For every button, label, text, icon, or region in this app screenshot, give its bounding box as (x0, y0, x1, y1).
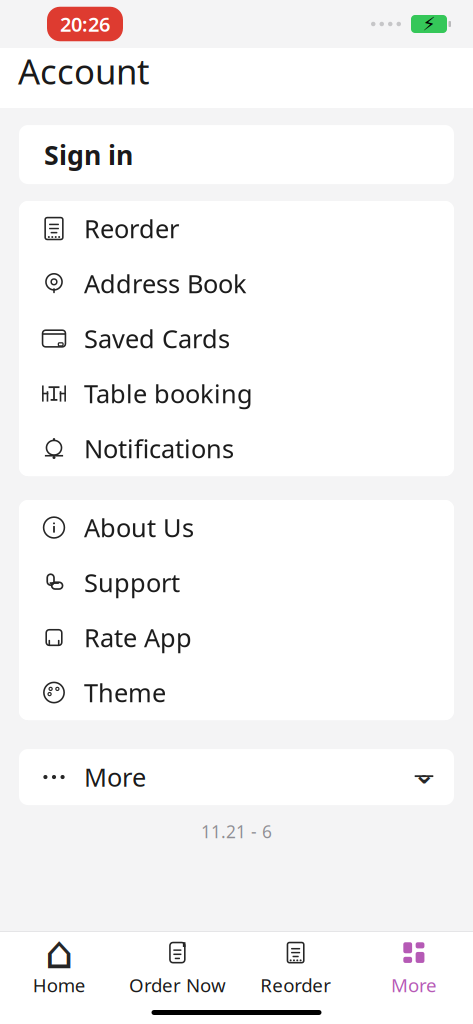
staticText: More (391, 973, 437, 997)
staticText: Notifications (84, 432, 234, 465)
staticText: ⌄ (413, 759, 435, 789)
button[interactable]: More (355, 929, 473, 1005)
button[interactable]: ⌂ (0, 929, 118, 1005)
staticText: Support (84, 566, 180, 599)
staticText: Address Book (84, 267, 247, 300)
staticText: Home (33, 973, 86, 997)
button[interactable]: Notifications (19, 421, 454, 476)
button[interactable]: About Us (19, 500, 454, 555)
staticText: Table booking (84, 377, 253, 410)
button[interactable]: Saved Cards (19, 311, 454, 366)
staticText: Account (18, 48, 150, 94)
staticText: 11.21 - 6 (201, 820, 272, 843)
staticText: Order Now (129, 973, 226, 997)
staticText: Theme (84, 676, 166, 709)
staticText: About Us (84, 511, 194, 544)
staticText: Reorder (260, 973, 331, 997)
staticText: Sign in (44, 137, 133, 172)
staticText: ⚡︎ (422, 13, 435, 35)
button[interactable]: Theme (19, 665, 454, 720)
button[interactable]: More (19, 749, 454, 805)
staticText: 20:26 (60, 11, 110, 37)
button[interactable]: Reorder (19, 201, 454, 256)
button[interactable]: Sign in (19, 125, 454, 184)
staticText: Saved Cards (84, 322, 230, 355)
button[interactable]: Order Now (118, 929, 236, 1005)
staticText: Rate App (84, 621, 192, 654)
button[interactable]: Support (19, 555, 454, 610)
staticText: Reorder (84, 212, 179, 245)
staticText: More (84, 760, 146, 794)
button[interactable]: Reorder (236, 929, 355, 1005)
button[interactable]: Rate App (19, 610, 454, 665)
staticText: ⌂ (45, 927, 74, 978)
button[interactable]: Table booking (19, 366, 454, 421)
button[interactable]: Address Book (19, 256, 454, 311)
